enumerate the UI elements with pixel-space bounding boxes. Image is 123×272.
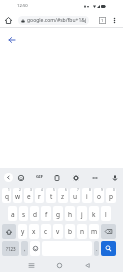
- button[interactable]: m: [89, 224, 99, 239]
- button[interactable]: e: [24, 188, 33, 203]
- staticText: k: [92, 210, 96, 219]
- button[interactable]: t: [46, 188, 56, 203]
- button[interactable]: Search: [101, 241, 116, 256]
- button[interactable]: Tabs: [96, 14, 109, 27]
- staticText: ,: [24, 245, 26, 252]
- button[interactable]: more: [89, 172, 100, 183]
- button[interactable]: mic: [109, 172, 120, 183]
- button[interactable]: x: [29, 224, 39, 239]
- button[interactable]: f: [41, 206, 51, 221]
- staticText: 0: [113, 188, 115, 192]
- staticText: 7: [77, 188, 79, 192]
- button[interactable]: h: [65, 206, 75, 221]
- button[interactable]: y: [18, 224, 27, 239]
- staticText: c: [44, 227, 48, 236]
- button[interactable]: Backspace: [101, 224, 116, 239]
- staticText: m: [91, 227, 98, 236]
- button[interactable]: .: [94, 241, 99, 256]
- staticText: 5: [53, 188, 55, 192]
- button[interactable]: Back: [7, 35, 16, 44]
- button[interactable]: b: [65, 224, 75, 239]
- staticText: b: [68, 227, 72, 236]
- button[interactable]: Recents: [25, 259, 38, 272]
- staticText: s: [22, 210, 26, 219]
- staticText: d: [33, 210, 37, 219]
- staticText: z: [61, 192, 65, 201]
- staticText: GIF: [36, 174, 43, 180]
- staticText: e: [27, 192, 31, 201]
- staticText: y: [21, 227, 25, 236]
- staticText: j: [81, 210, 83, 219]
- button[interactable]: k: [89, 206, 99, 221]
- staticText: .: [96, 245, 98, 252]
- button[interactable]: Home: [3, 15, 14, 26]
- staticText: r: [38, 192, 41, 201]
- staticText: f: [45, 210, 48, 219]
- staticText: o: [97, 192, 101, 201]
- button[interactable]: settings: [70, 172, 81, 183]
- staticText: g: [56, 210, 60, 219]
- button[interactable]: r: [35, 188, 44, 203]
- staticText: 4: [41, 188, 43, 192]
- staticText: i: [86, 192, 88, 201]
- button[interactable]: google.com/#sb/fbu+1&j: [18, 16, 89, 25]
- button[interactable]: i: [82, 188, 92, 203]
- staticText: a: [11, 210, 15, 219]
- button[interactable]: o: [94, 188, 104, 203]
- staticText: 2: [19, 188, 21, 192]
- button[interactable]: p: [106, 188, 116, 203]
- button[interactable]: u: [70, 188, 80, 203]
- button[interactable]: w: [13, 188, 22, 203]
- button[interactable]: Home: [53, 259, 66, 272]
- button[interactable]: g: [53, 206, 63, 221]
- staticText: w: [15, 192, 21, 201]
- button[interactable]: j: [77, 206, 87, 221]
- staticText: h: [68, 210, 73, 219]
- staticText: 1: [101, 18, 104, 24]
- button[interactable]: s: [19, 206, 28, 221]
- staticText: ?123: [6, 246, 16, 252]
- button[interactable]: More options: [108, 14, 121, 27]
- button[interactable]: Back: [81, 259, 94, 272]
- staticText: v: [56, 227, 60, 236]
- button[interactable]: l: [101, 206, 111, 221]
- button[interactable]: Shift: [2, 224, 16, 239]
- button[interactable]: z: [58, 188, 68, 203]
- staticText: 3: [30, 188, 32, 192]
- staticText: google.com/#sb/fbu+1&j: [27, 17, 87, 24]
- staticText: l: [105, 210, 107, 219]
- button[interactable]: clipboard: [51, 172, 62, 183]
- staticText: 9: [101, 188, 103, 192]
- staticText: 6: [65, 188, 67, 192]
- staticText: q: [5, 192, 9, 201]
- button[interactable]: ?123: [2, 241, 19, 256]
- button[interactable]: ,: [21, 241, 28, 256]
- staticText: t: [50, 192, 53, 201]
- button[interactable]: sticker: [15, 172, 26, 183]
- button[interactable]: d: [30, 206, 39, 221]
- staticText: 12:50: [17, 3, 28, 9]
- button[interactable]: n: [77, 224, 87, 239]
- button[interactable]: v: [53, 224, 63, 239]
- button[interactable]: a: [8, 206, 17, 221]
- button[interactable]: GIF: [33, 171, 45, 183]
- staticText: n: [80, 227, 85, 236]
- button[interactable]: Emoji: [30, 241, 40, 256]
- staticText: u: [73, 192, 78, 201]
- staticText: x: [32, 227, 36, 236]
- button[interactable]: q: [2, 188, 11, 203]
- button[interactable]: Back: [4, 173, 13, 182]
- staticText: 8: [89, 188, 91, 192]
- staticText: 1: [8, 188, 10, 192]
- staticText: p: [109, 192, 113, 201]
- button[interactable]: c: [41, 224, 51, 239]
